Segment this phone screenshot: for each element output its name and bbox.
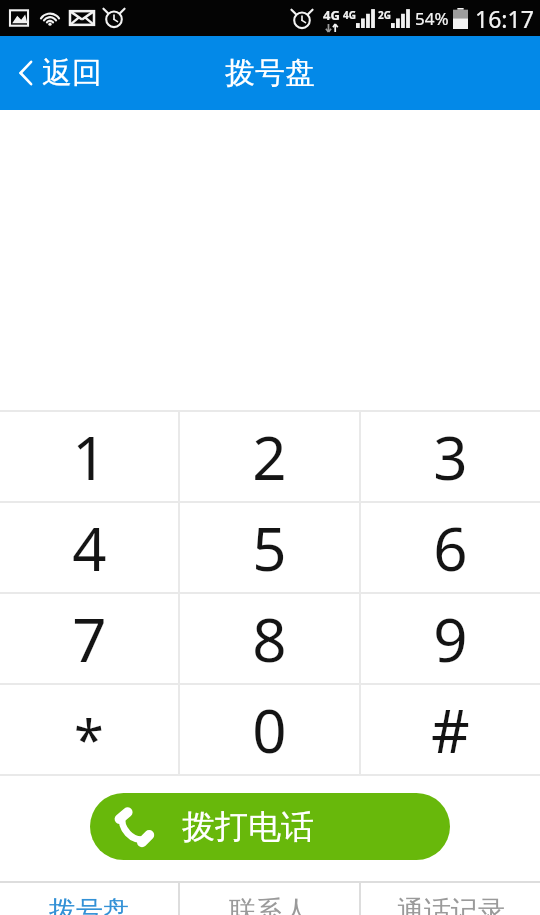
button[interactable]: #	[361, 685, 540, 774]
button[interactable]: 3	[361, 412, 540, 501]
staticText: 6	[433, 507, 468, 589]
staticText: 拨号盘	[49, 894, 130, 915]
staticText: 0	[252, 689, 287, 771]
button[interactable]: 拨号盘	[0, 883, 178, 915]
staticText: 2G	[378, 8, 391, 22]
staticText: 16:17	[475, 3, 534, 34]
staticText: 联系人	[229, 894, 310, 915]
button[interactable]: *	[0, 685, 178, 774]
staticText: 1	[72, 416, 107, 498]
staticText: 拨号盘	[225, 54, 315, 92]
button[interactable]: 9	[361, 594, 540, 683]
staticText: 2	[252, 416, 287, 498]
staticText: 返回	[42, 54, 102, 92]
staticText: 3	[433, 416, 468, 498]
staticText: 4	[72, 507, 107, 589]
button[interactable]: 2	[180, 412, 359, 501]
staticText: 通话记录	[397, 894, 505, 915]
button[interactable]: 5	[180, 503, 359, 592]
staticText: 4G	[323, 6, 340, 24]
button[interactable]: 7	[0, 594, 178, 683]
staticText: 7	[72, 598, 107, 680]
staticText: #	[431, 689, 470, 771]
button[interactable]: 1	[0, 412, 178, 501]
staticText: 9	[433, 598, 468, 680]
staticText: 8	[252, 598, 287, 680]
button[interactable]: 0	[180, 685, 359, 774]
button[interactable]: 8	[180, 594, 359, 683]
button[interactable]: 联系人	[180, 883, 359, 915]
staticText: *	[74, 702, 104, 776]
button[interactable]: 4	[0, 503, 178, 592]
button[interactable]: 返回	[0, 46, 116, 100]
staticText: 5	[252, 507, 287, 589]
button[interactable]: 通话记录	[361, 883, 540, 915]
button[interactable]: 6	[361, 503, 540, 592]
staticText: 54%	[415, 7, 449, 30]
staticText: 拨打电话	[182, 806, 314, 848]
button[interactable]: 拨打电话	[90, 793, 450, 860]
staticText: 4G	[343, 8, 356, 22]
